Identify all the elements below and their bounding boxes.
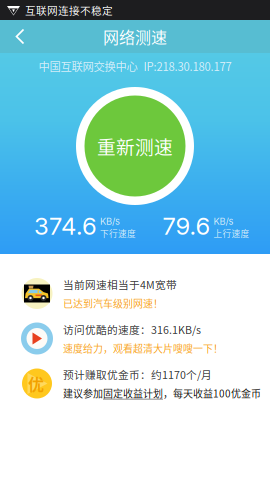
staticText: 速度给力，观看超清大片嗖嗖一下！	[63, 341, 223, 355]
button[interactable]: 当前网速相当于4M宽带	[0, 271, 270, 316]
staticText: KB/s	[213, 216, 233, 227]
staticText: 互联网连接不稳定	[25, 2, 113, 18]
staticText: 上行速度	[213, 227, 249, 239]
staticText: 预计赚取优金币：约1170个/月	[63, 367, 212, 382]
staticText: 访问优酷的速度：316.1KB/s	[63, 321, 201, 337]
button[interactable]: Back	[0, 20, 40, 53]
button[interactable]: 重新测速	[76, 87, 194, 205]
staticText: 建议参加固定收益计划，每天收益100优金币	[63, 386, 261, 400]
staticText: 374.6	[34, 211, 97, 240]
staticText: 优	[28, 372, 44, 395]
staticText: 重新测速	[97, 132, 173, 159]
staticText: 79.6	[162, 211, 210, 240]
staticText: 当前网速相当于4M宽带	[63, 276, 177, 292]
staticText: 已达到汽车级别网速！	[63, 296, 163, 310]
button[interactable]: 访问优酷的速度：316.1KB/s	[0, 316, 270, 361]
staticText: 网络测速	[103, 25, 167, 48]
button[interactable]: 优	[0, 361, 270, 406]
staticText: KB/s	[100, 216, 120, 227]
staticText: 中国互联网交换中心 IP:218.30.180.177	[38, 58, 231, 74]
staticText: 下行速度	[100, 227, 136, 239]
